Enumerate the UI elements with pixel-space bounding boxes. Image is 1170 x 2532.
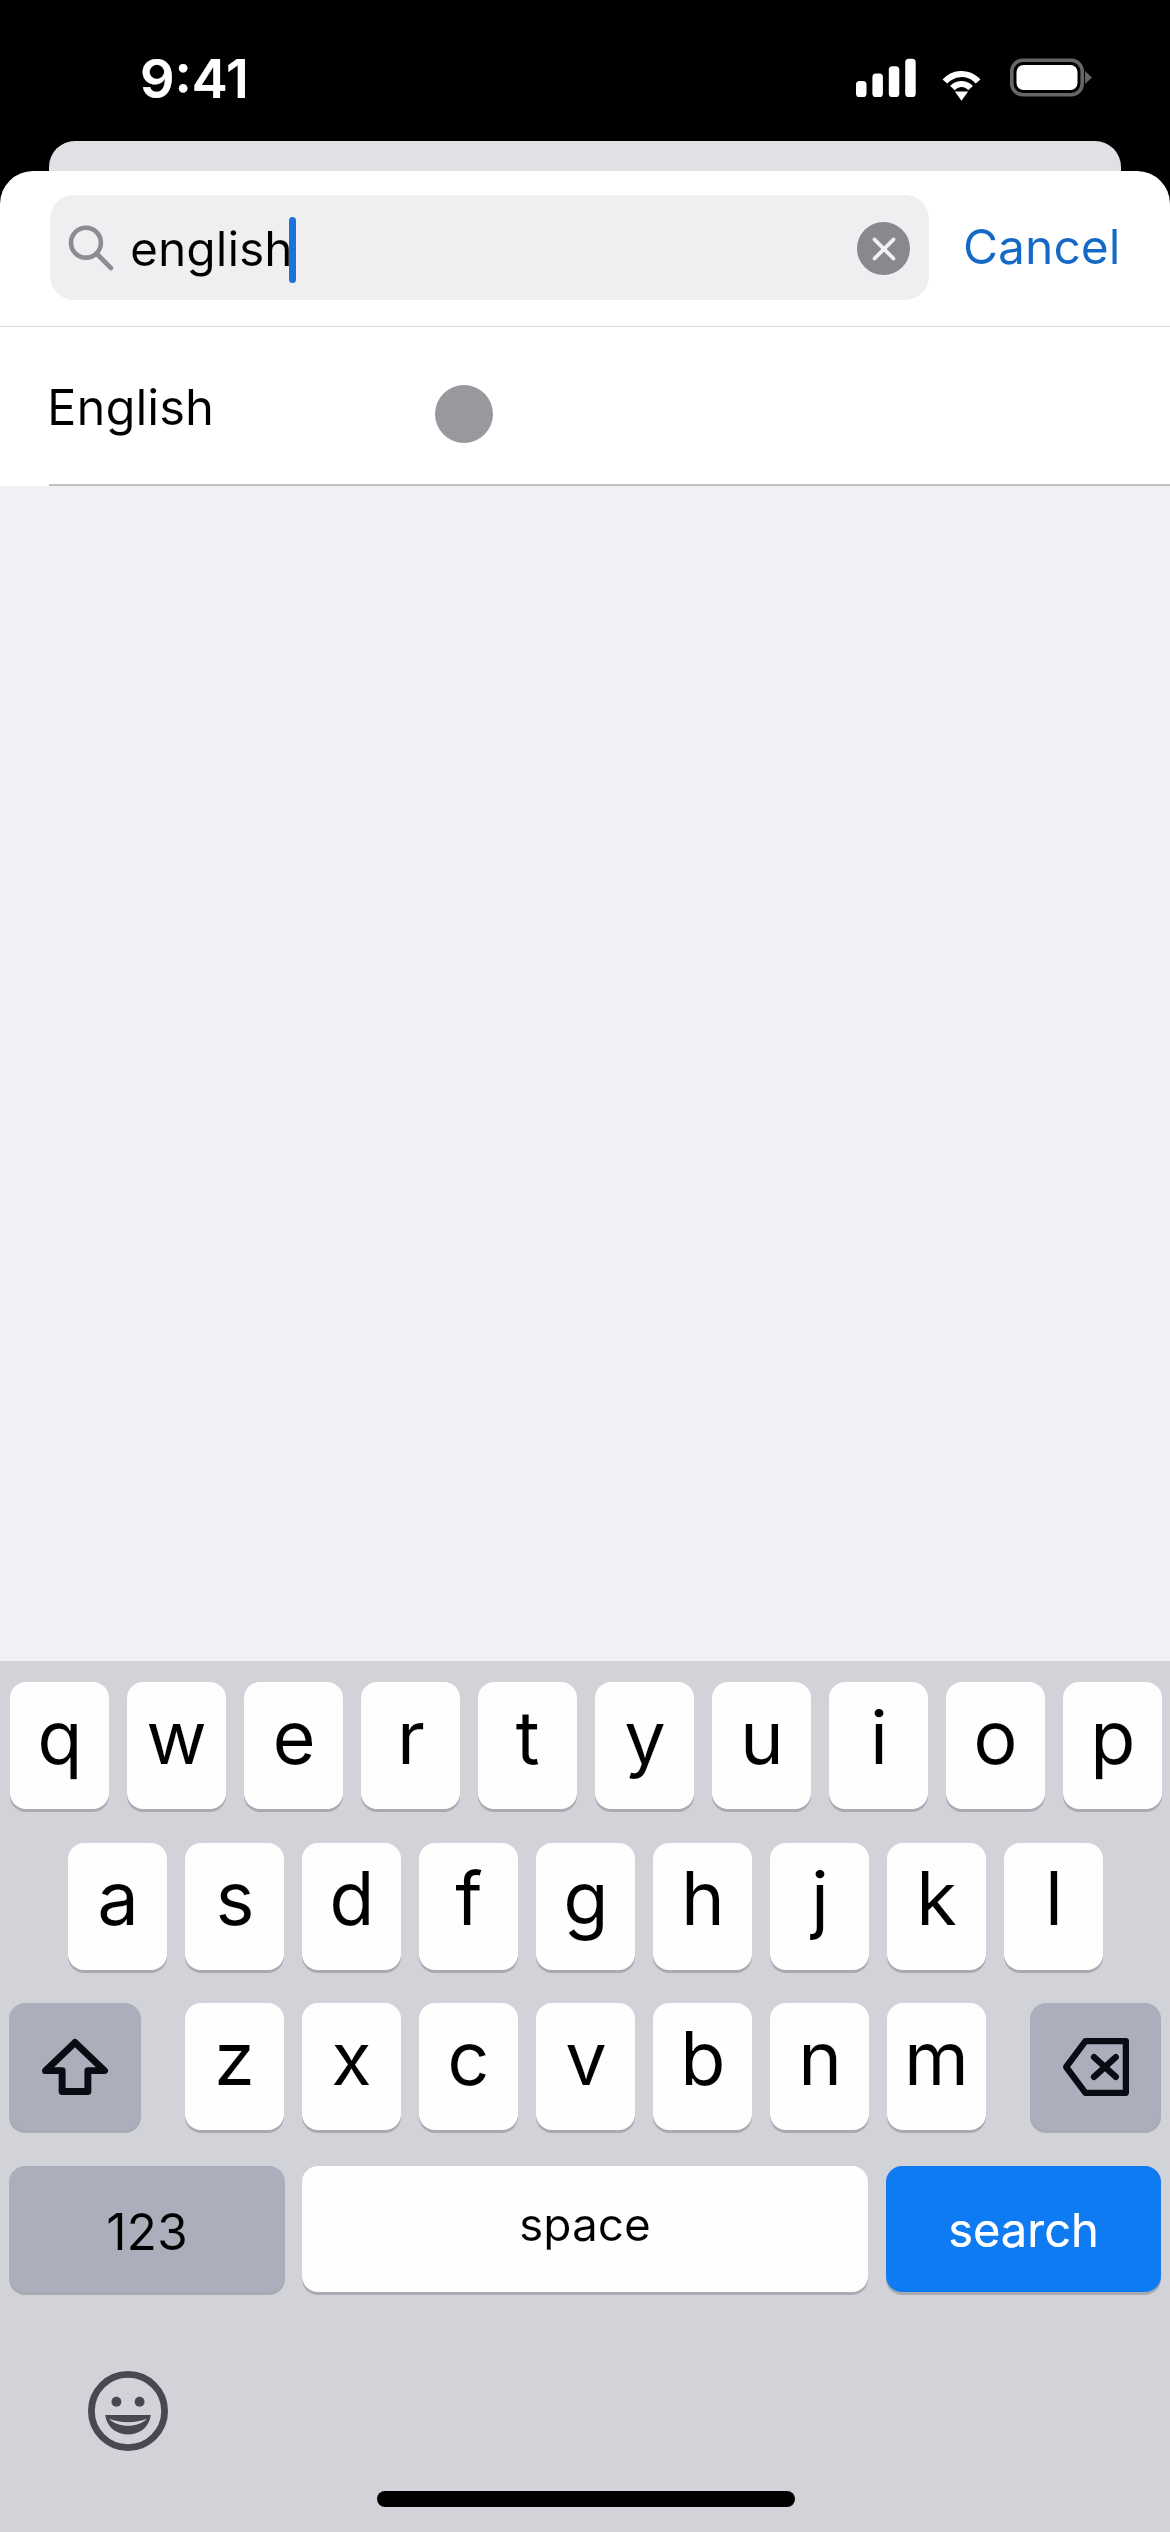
button[interactable]: space xyxy=(302,2166,868,2292)
button[interactable]: h xyxy=(653,1843,752,1970)
button[interactable]: l xyxy=(1004,1843,1103,1970)
staticText: space xyxy=(519,2196,651,2252)
staticText: r xyxy=(397,1692,425,1782)
staticText: z xyxy=(214,2013,255,2103)
button[interactable]: o xyxy=(946,1682,1045,1809)
button[interactable]: n xyxy=(770,2003,869,2130)
button[interactable]: e xyxy=(244,1682,343,1809)
staticText: t xyxy=(515,1692,540,1782)
button[interactable]: b xyxy=(653,2003,752,2130)
staticText: f xyxy=(455,1853,483,1943)
staticText: v xyxy=(565,2013,607,2103)
button[interactable]: i xyxy=(829,1682,928,1809)
button[interactable]: m xyxy=(887,2003,986,2130)
button[interactable]: t xyxy=(478,1682,577,1809)
button[interactable]: s xyxy=(185,1843,284,1970)
staticText: n xyxy=(798,2013,842,2103)
button[interactable]: Clear text xyxy=(857,222,910,275)
button[interactable]: z xyxy=(185,2003,284,2130)
button[interactable]: search xyxy=(886,2166,1161,2292)
staticText: k xyxy=(916,1853,957,1943)
staticText: search xyxy=(948,2201,1099,2258)
staticText: o xyxy=(973,1692,1018,1782)
staticText: m xyxy=(904,2013,969,2103)
staticText: x xyxy=(331,2013,372,2103)
button[interactable]: d xyxy=(302,1843,401,1970)
staticText: 123 xyxy=(106,2202,188,2262)
button[interactable]: Shift xyxy=(9,2003,141,2130)
button[interactable]: English xyxy=(0,327,1170,486)
button[interactable]: g xyxy=(536,1843,635,1970)
button[interactable] xyxy=(50,195,929,300)
staticText: english xyxy=(130,219,293,277)
staticText: b xyxy=(680,2013,726,2103)
staticText: j xyxy=(811,1853,829,1943)
staticText: s xyxy=(215,1853,255,1943)
button[interactable]: f xyxy=(419,1843,518,1970)
button[interactable]: k xyxy=(887,1843,986,1970)
button[interactable]: v xyxy=(536,2003,635,2130)
button[interactable]: w xyxy=(127,1682,226,1809)
staticText: a xyxy=(97,1853,139,1943)
button[interactable]: Cancel xyxy=(937,195,1167,300)
staticText: q xyxy=(37,1692,83,1782)
button[interactable]: u xyxy=(712,1682,811,1809)
button[interactable]: 123 xyxy=(9,2166,285,2292)
staticText: Cancel xyxy=(963,217,1121,275)
staticText: g xyxy=(563,1853,609,1943)
staticText: d xyxy=(329,1853,375,1943)
staticText: c xyxy=(447,2013,490,2103)
button[interactable]: y xyxy=(595,1682,694,1809)
button[interactable]: a xyxy=(68,1843,167,1970)
button[interactable]: c xyxy=(419,2003,518,2130)
staticText: e xyxy=(272,1692,316,1782)
button[interactable]: p xyxy=(1063,1682,1162,1809)
button[interactable]: Emoji keyboard xyxy=(80,2363,176,2459)
button[interactable]: Backspace xyxy=(1030,2003,1161,2130)
button[interactable]: r xyxy=(361,1682,460,1809)
staticText: 9:41 xyxy=(140,46,249,111)
staticText: h xyxy=(681,1853,725,1943)
button[interactable]: x xyxy=(302,2003,401,2130)
button[interactable]: j xyxy=(770,1843,869,1970)
staticText: English xyxy=(47,378,215,437)
staticText: u xyxy=(740,1692,784,1782)
staticText: p xyxy=(1090,1692,1136,1782)
staticText: i xyxy=(870,1692,888,1782)
staticText: l xyxy=(1045,1853,1063,1943)
button[interactable]: q xyxy=(10,1682,109,1809)
staticText: y xyxy=(624,1692,666,1782)
staticText: w xyxy=(146,1692,207,1782)
